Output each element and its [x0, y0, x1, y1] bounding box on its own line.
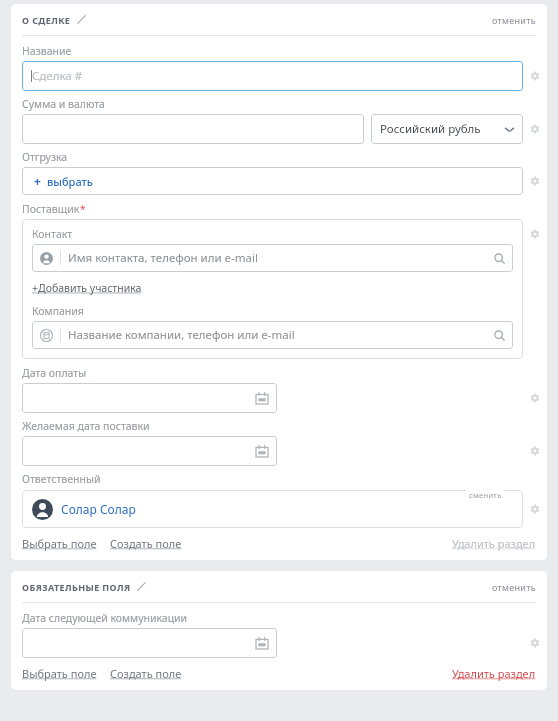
button[interactable]: Выбрать дату — [22, 383, 277, 413]
staticText: + — [34, 173, 41, 189]
staticText: Выбрать поле — [22, 666, 97, 681]
button[interactable]: Редактировать название раздела — [75, 13, 88, 26]
staticText: отменить — [492, 14, 536, 26]
button[interactable]: сменить — [466, 490, 505, 500]
staticText: Сделка # — [32, 68, 83, 84]
staticText: Создать поле — [110, 536, 182, 551]
button[interactable]: Настройки поля — [526, 120, 544, 138]
button[interactable]: Настройки поля — [526, 389, 544, 407]
button[interactable]: Выбрать дату — [22, 436, 277, 466]
button[interactable]: Удалить раздел — [452, 536, 536, 551]
staticText: Контакт — [32, 227, 73, 241]
button[interactable]: Выбрать дату — [22, 628, 277, 658]
button[interactable]: отменить — [492, 581, 536, 593]
button[interactable]: Настройки поля — [526, 225, 544, 243]
staticText: выбрать — [47, 174, 93, 189]
staticText: Отгрузка — [22, 150, 68, 164]
staticText: Название — [22, 44, 72, 58]
staticText: О СДЕЛКЕ — [22, 14, 71, 26]
staticText: Дата следующей коммуникации — [22, 611, 188, 625]
staticText: Российский рубль — [380, 121, 481, 137]
staticText: Сумма и валюта — [22, 97, 105, 111]
button[interactable]: Имя контакта, телефон или e-mail — [32, 244, 513, 272]
button[interactable]: Российский рубль — [371, 114, 523, 144]
staticText: ОБЯЗАТЕЛЬНЫЕ ПОЛЯ — [22, 581, 131, 593]
staticText: Создать поле — [110, 666, 182, 681]
staticText: Компания — [32, 304, 84, 318]
button[interactable] — [22, 114, 364, 144]
staticText: Дата оплаты — [22, 366, 87, 380]
staticText: Выбрать поле — [22, 536, 97, 551]
button[interactable]: Солар Солар — [22, 490, 523, 528]
staticText: Желаемая дата поставки — [22, 419, 150, 433]
button[interactable]: Выбрать поле — [22, 536, 97, 551]
button[interactable]: Настройки поля — [526, 67, 544, 85]
staticText: отменить — [492, 581, 536, 593]
staticText: Удалить раздел — [452, 666, 536, 681]
staticText: Солар Солар — [61, 501, 136, 517]
button[interactable]: отменить — [492, 14, 536, 26]
button[interactable]: Создать поле — [110, 666, 182, 681]
staticText: сменить — [469, 490, 502, 500]
button[interactable]: Настройки поля — [526, 442, 544, 460]
staticText: * — [80, 202, 86, 216]
staticText: Ответственный — [22, 472, 101, 486]
staticText: +Добавить участника — [32, 281, 142, 295]
button[interactable]: + — [22, 167, 523, 195]
button[interactable]: Редактировать название раздела — [135, 580, 148, 593]
button[interactable]: Название компании, телефон или e-mail — [32, 321, 513, 349]
button[interactable]: Выбрать поле — [22, 666, 97, 681]
button[interactable]: Создать поле — [110, 536, 182, 551]
staticText: Поставщик — [22, 202, 80, 216]
staticText: Имя контакта, телефон или e-mail — [68, 250, 494, 266]
button[interactable]: Сделка # — [22, 61, 523, 91]
staticText: Название компании, телефон или e-mail — [68, 327, 494, 343]
button[interactable]: +Добавить участника — [32, 281, 142, 295]
button[interactable]: Удалить раздел — [452, 666, 536, 681]
staticText: Удалить раздел — [452, 536, 536, 551]
button[interactable]: Настройки поля — [526, 634, 544, 652]
button[interactable]: Настройки поля — [526, 172, 544, 190]
button[interactable]: Настройки поля — [526, 500, 544, 518]
